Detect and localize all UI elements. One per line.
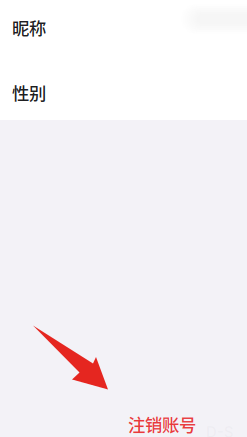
- staticText: 昵称: [12, 15, 46, 40]
- button[interactable]: 性别: [0, 55, 247, 130]
- button[interactable]: 昵称: [0, 0, 247, 55]
- button[interactable]: 注销账号: [0, 411, 247, 437]
- staticText: 注销账号: [128, 411, 196, 437]
- staticText: 性别: [12, 80, 46, 105]
